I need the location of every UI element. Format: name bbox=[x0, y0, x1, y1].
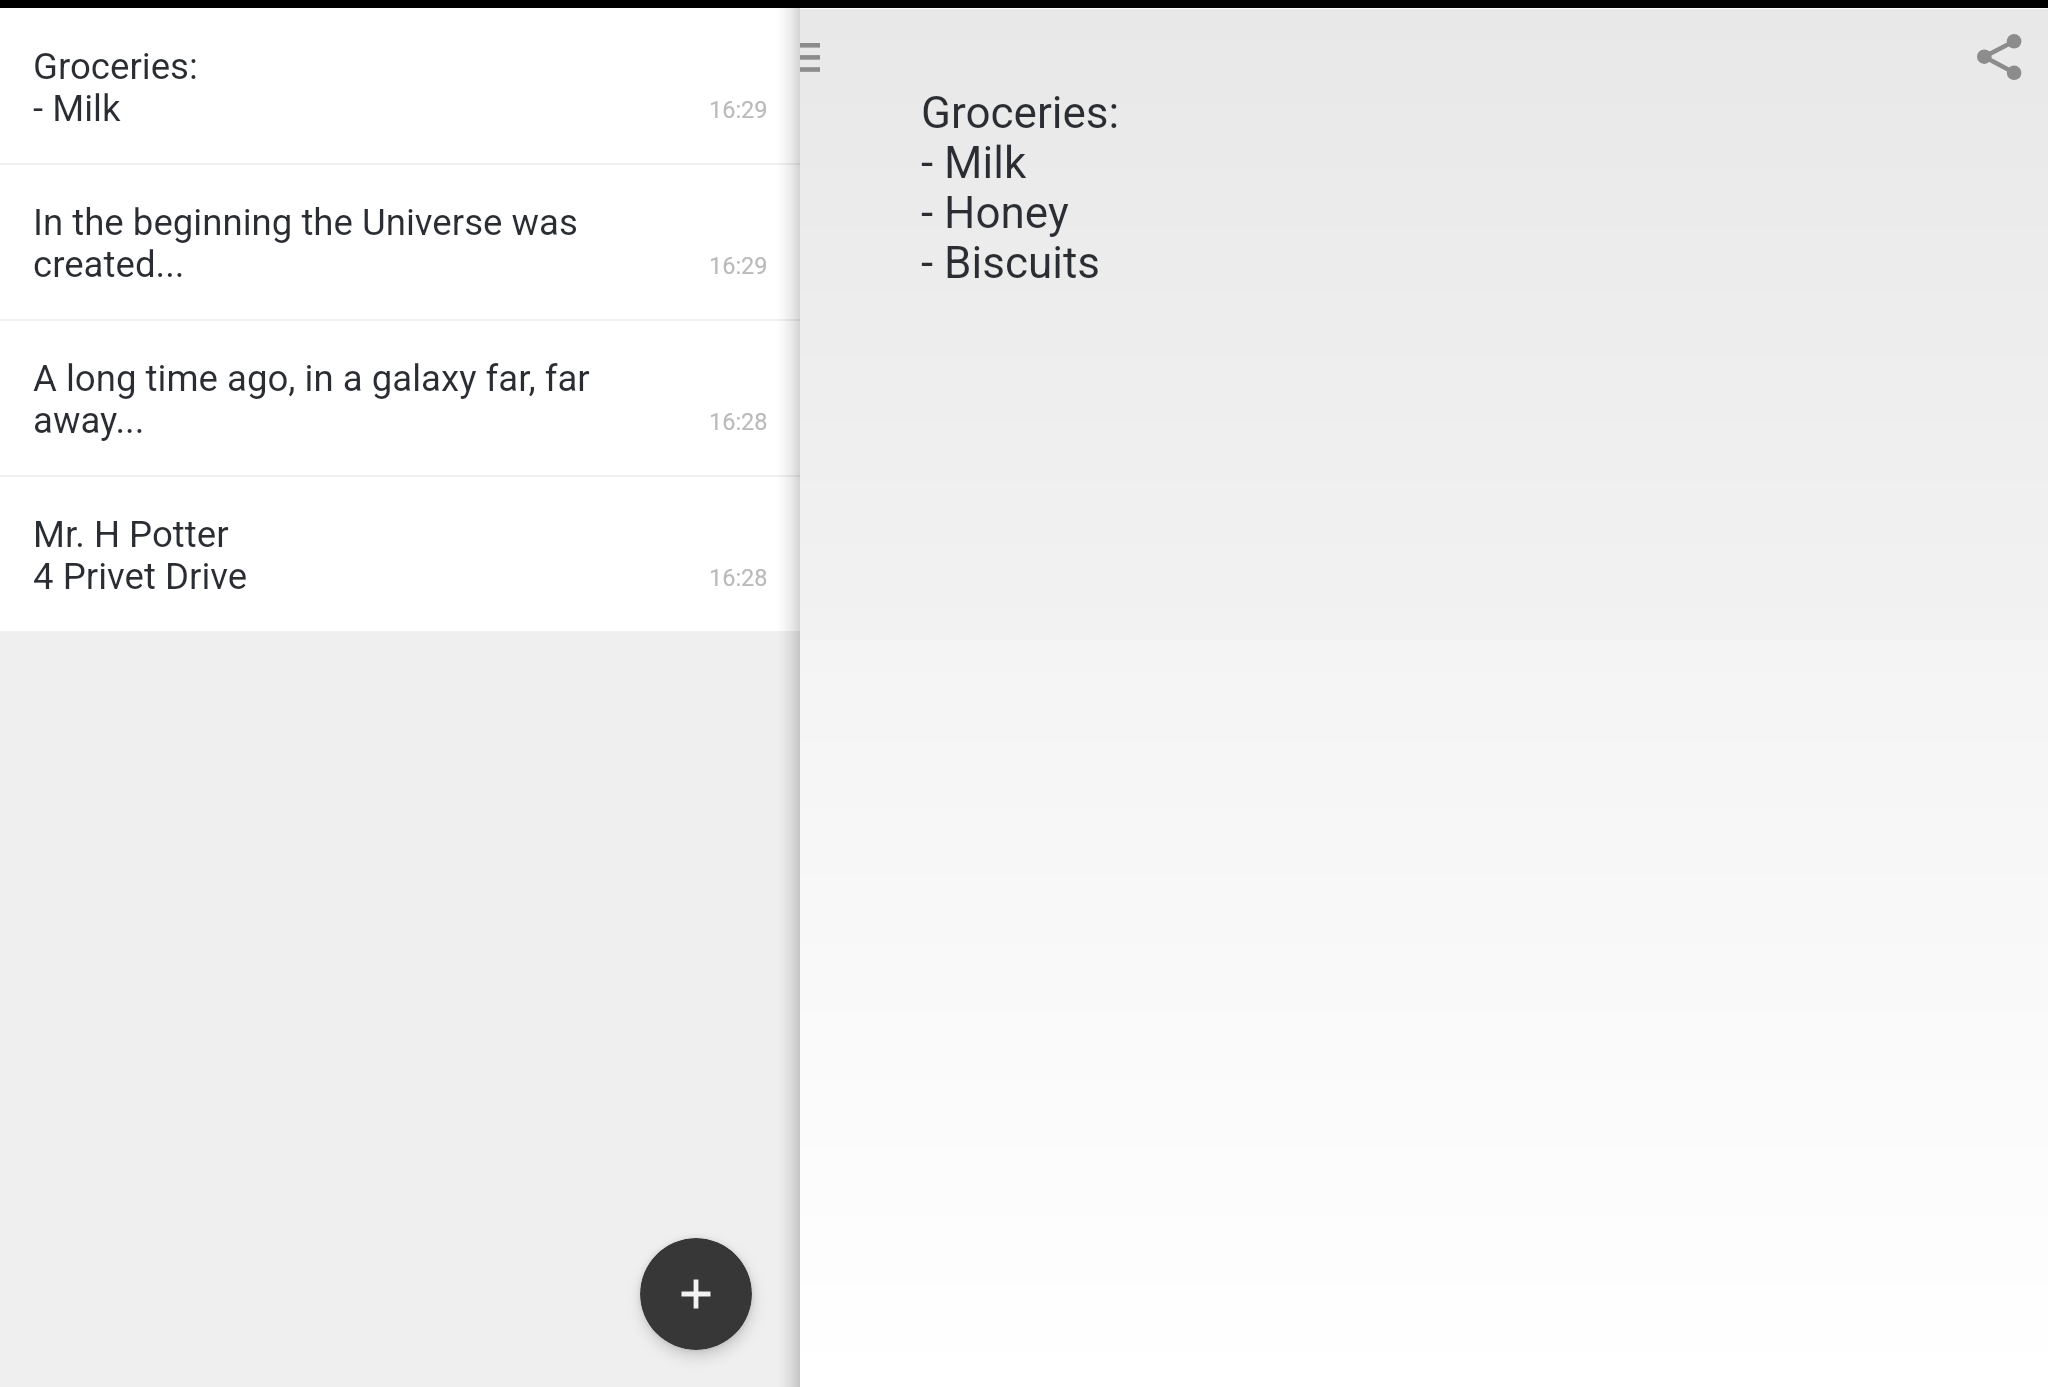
staticText: created... bbox=[33, 244, 185, 286]
button[interactable]: New note bbox=[640, 1238, 752, 1350]
staticText: 4 Privet Drive bbox=[33, 556, 248, 598]
button[interactable]: Mr. H Potter bbox=[0, 477, 800, 631]
staticText: Mr. H Potter bbox=[33, 514, 229, 556]
staticText: A long time ago, in a galaxy far, far bbox=[33, 358, 590, 400]
staticText: Groceries: bbox=[33, 46, 198, 88]
staticText: In the beginning the Universe was bbox=[33, 202, 578, 244]
staticText: 16:28 bbox=[709, 564, 768, 592]
staticText: - Honey bbox=[921, 188, 1069, 238]
button[interactable]: Menu bbox=[800, 34, 834, 80]
staticText: 16:29 bbox=[709, 96, 768, 124]
staticText: away... bbox=[33, 400, 145, 442]
staticText: - Milk bbox=[921, 138, 1027, 188]
staticText: - Biscuits bbox=[921, 238, 1100, 288]
button[interactable]: Groceries: bbox=[0, 9, 800, 163]
staticText: - Milk bbox=[33, 88, 121, 130]
staticText: 16:28 bbox=[709, 408, 768, 436]
button[interactable]: A long time ago, in a galaxy far, far bbox=[0, 321, 800, 475]
staticText: Groceries: bbox=[921, 88, 1120, 138]
button[interactable]: Share bbox=[1953, 10, 2047, 104]
staticText: 16:29 bbox=[709, 252, 768, 280]
button[interactable]: In the beginning the Universe was bbox=[0, 165, 800, 319]
